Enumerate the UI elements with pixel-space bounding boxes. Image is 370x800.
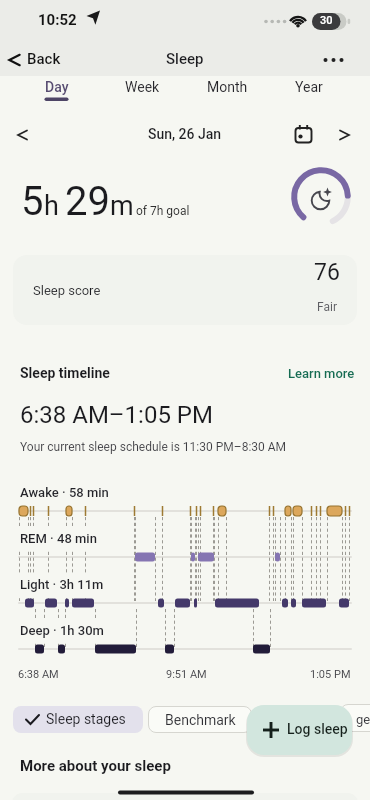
staticText: Log sleep [287,721,348,737]
staticText: Sleep [166,50,204,68]
staticText: REM · 48 min [20,531,97,546]
button[interactable]: Week [115,77,169,99]
button[interactable]: Year [285,77,335,99]
staticText: 29 [65,178,110,225]
staticText: Day [45,79,69,95]
staticText: More about your sleep [20,757,171,775]
button[interactable] [288,122,318,148]
staticText: Fair [317,300,337,314]
staticText: Sleep score [33,283,101,298]
staticText: 76 [314,259,340,286]
button[interactable]: Benchmark [148,706,252,733]
button[interactable]: Back [6,46,76,74]
button[interactable]: Month [197,77,257,99]
staticText: Benchmark [165,712,236,728]
staticText: Sleep timeline [20,365,110,381]
staticText: 1:05 PM [310,668,351,681]
staticText: 10:52 [38,11,77,29]
button[interactable] [13,255,357,325]
staticText: Year [295,79,323,95]
button[interactable] [332,122,360,148]
button[interactable] [8,122,36,148]
staticText: 9:51 AM [166,668,207,681]
staticText: Sleep stages [46,711,126,727]
staticText: Light · 3h 11m [20,577,104,592]
button[interactable]: Learn more [284,362,354,384]
staticText: Sun, 26 Jan [148,126,222,142]
staticText: of 7h goal [136,204,190,218]
staticText: Month [207,79,248,95]
staticText: Deep · 1h 30m [20,623,104,638]
staticText: ge [356,712,370,727]
button[interactable]: Sleep stages [13,706,143,733]
staticText: Your current sleep schedule is 11:30 PM–… [20,440,287,454]
staticText: Week [125,79,160,95]
button[interactable] [318,48,352,72]
staticText: 30 [320,14,333,27]
button[interactable]: Day [31,77,83,99]
button[interactable]: Log sleep [247,705,352,755]
button[interactable]: Sun, 26 Jan [0,126,370,142]
staticText: m [110,190,134,222]
staticText: Learn more [288,366,355,381]
staticText: Awake · 58 min [20,485,109,500]
staticText: 5 [21,178,44,225]
staticText: 6:38 AM–1:05 PM [20,401,213,429]
staticText: Back [27,50,61,68]
staticText: h [44,190,59,222]
staticText: 6:38 AM [18,668,59,681]
